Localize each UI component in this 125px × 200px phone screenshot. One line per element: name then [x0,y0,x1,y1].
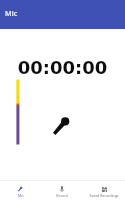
staticText: Mic [5,8,18,18]
staticText: 00:00:00 [0,57,125,78]
staticText: Saved Recordings [89,193,119,198]
button[interactable]: Record [41,186,83,200]
staticText: Mic [18,193,24,198]
button[interactable]: Mic [0,186,41,200]
staticText: Record [56,193,68,198]
button[interactable]: Saved Recordings [83,186,125,200]
